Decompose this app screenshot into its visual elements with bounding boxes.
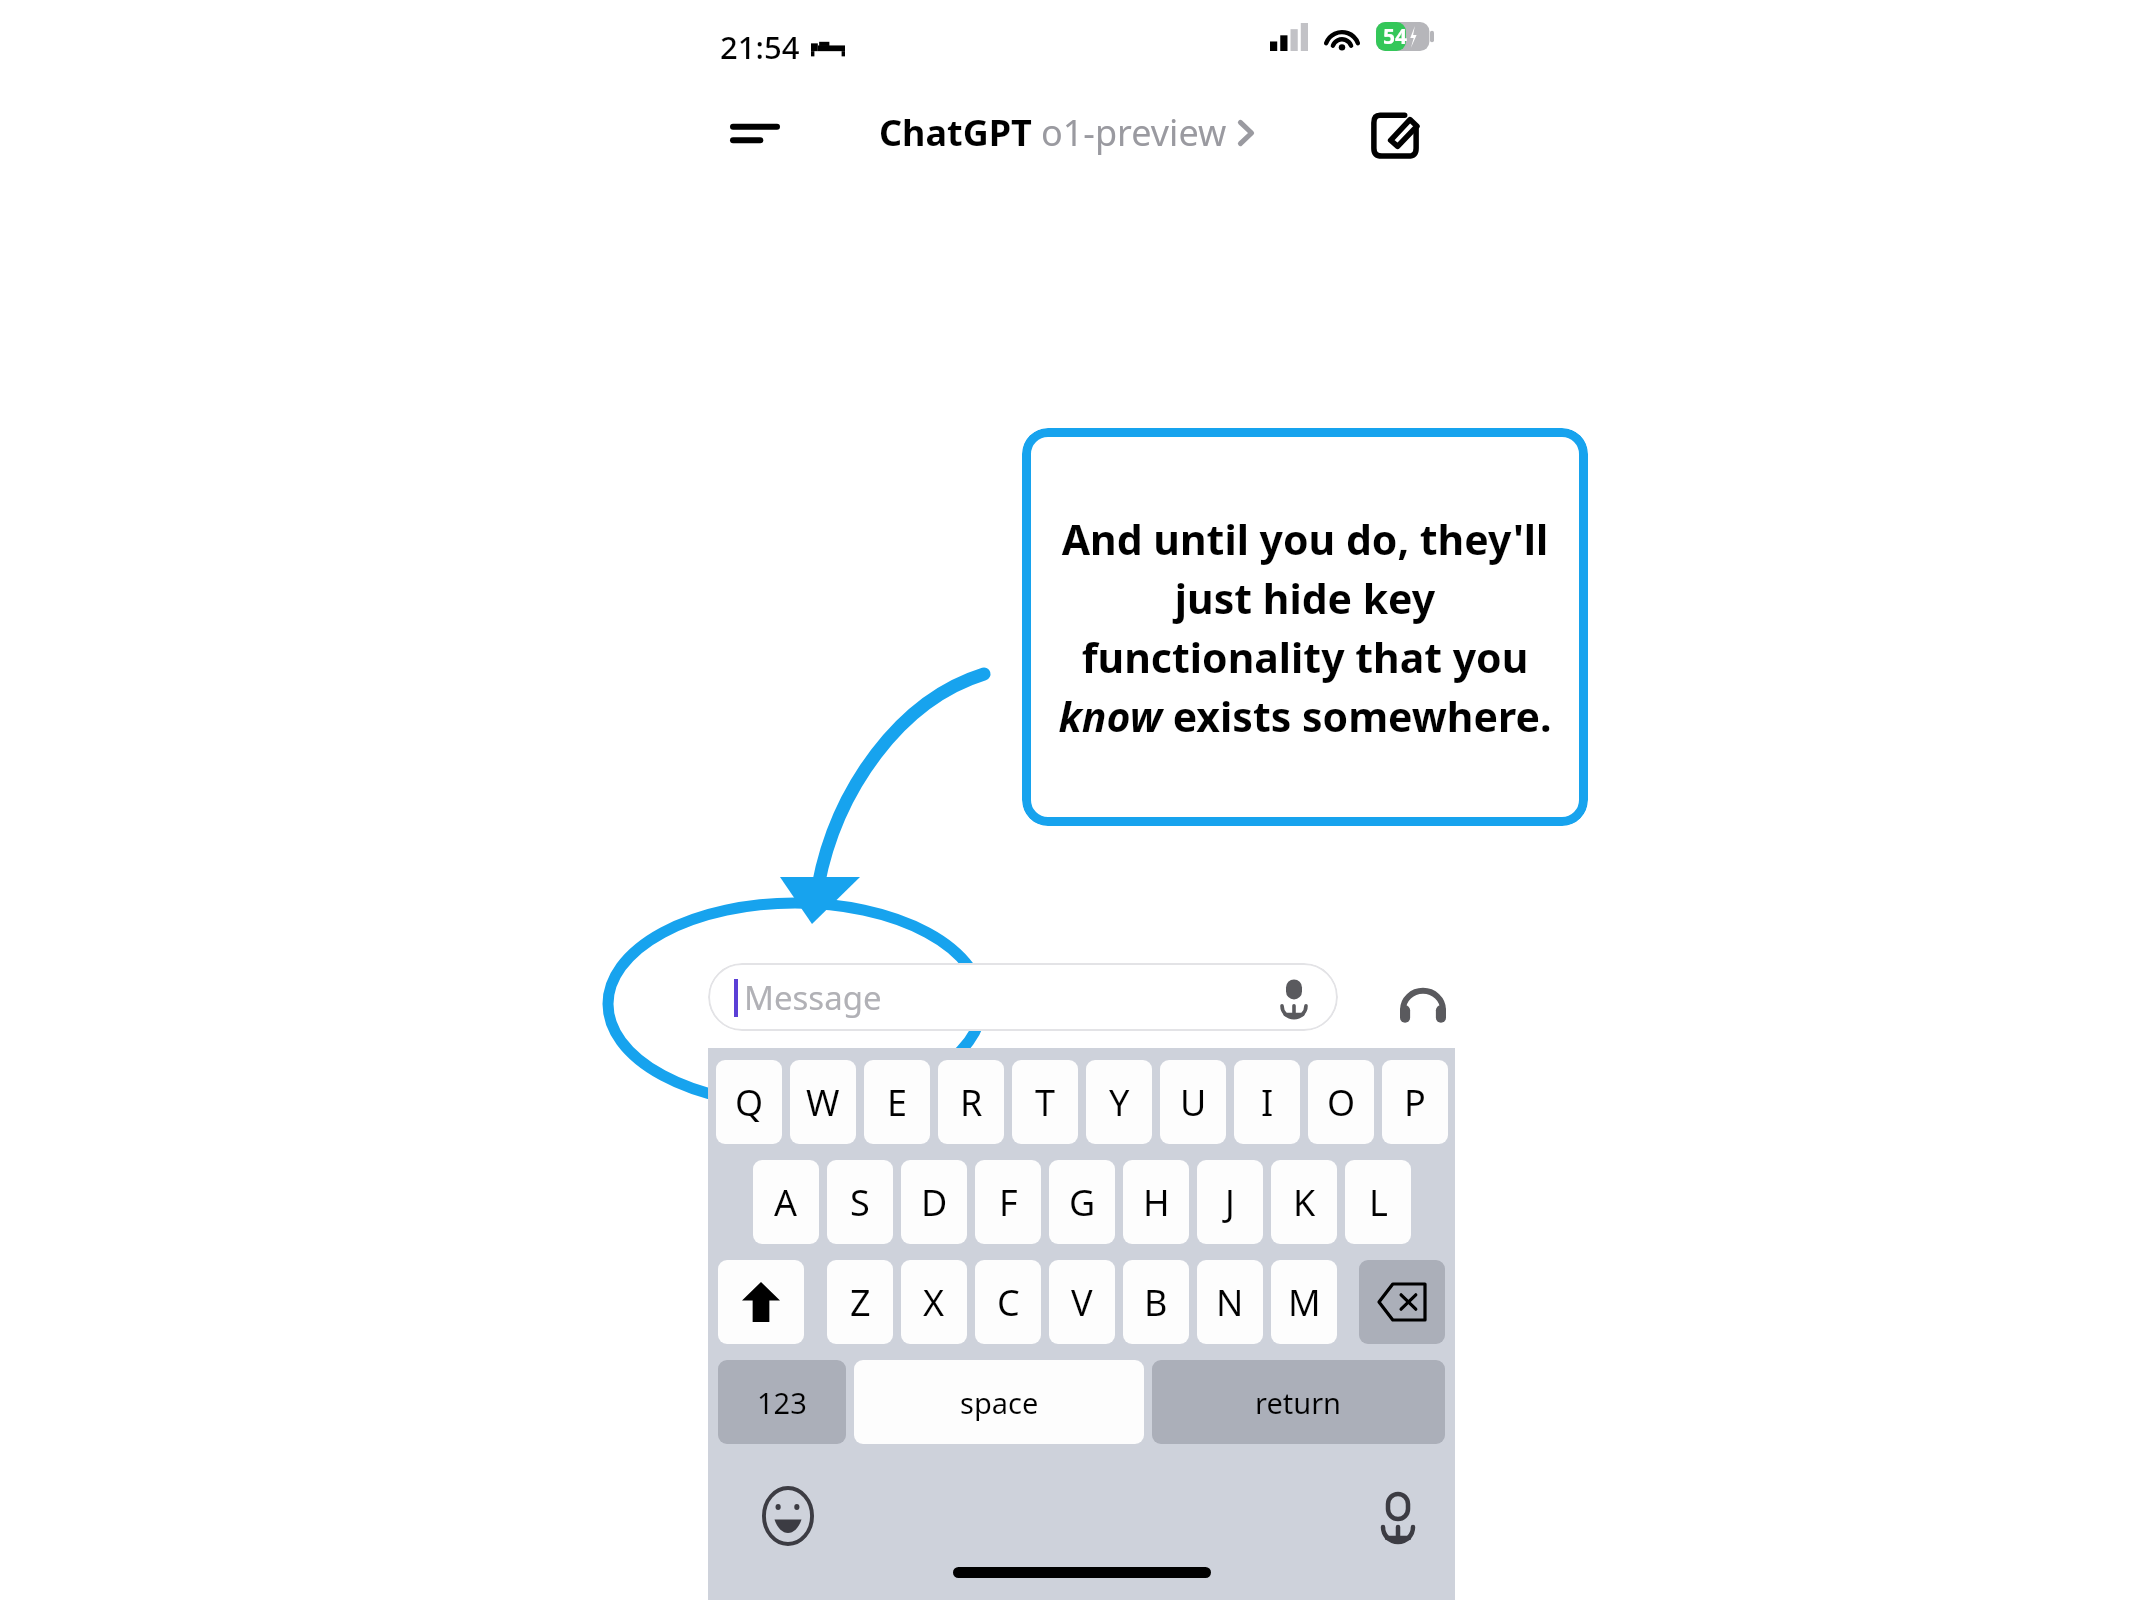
staticText: U bbox=[1180, 1078, 1207, 1127]
button[interactable]: Voice mode bbox=[1391, 974, 1455, 1038]
button[interactable]: T bbox=[1012, 1060, 1078, 1144]
button[interactable]: W bbox=[790, 1060, 856, 1144]
staticText: C bbox=[997, 1278, 1020, 1327]
button[interactable]: V bbox=[1049, 1260, 1115, 1344]
button[interactable]: G bbox=[1049, 1160, 1115, 1244]
staticText: W bbox=[806, 1078, 840, 1127]
button[interactable]: Z bbox=[827, 1260, 893, 1344]
staticText: R bbox=[960, 1078, 983, 1127]
button[interactable]: L bbox=[1345, 1160, 1411, 1244]
staticText: J bbox=[1225, 1178, 1235, 1227]
button[interactable]: K bbox=[1271, 1160, 1337, 1244]
staticText: o1-preview bbox=[1041, 108, 1227, 157]
button[interactable]: H bbox=[1123, 1160, 1189, 1244]
staticText: And until you do, they'll just hide key … bbox=[1048, 511, 1562, 744]
button[interactable]: space bbox=[854, 1360, 1144, 1444]
button[interactable]: A bbox=[753, 1160, 819, 1244]
staticText: A bbox=[774, 1178, 798, 1227]
button[interactable]: I bbox=[1234, 1060, 1300, 1144]
button[interactable]: New chat bbox=[1355, 95, 1435, 175]
staticText: return bbox=[1255, 1383, 1342, 1422]
button[interactable]: return bbox=[1152, 1360, 1445, 1444]
button[interactable]: Message bbox=[708, 963, 1338, 1031]
staticText: L bbox=[1369, 1178, 1388, 1227]
staticText: Q bbox=[735, 1078, 764, 1127]
button[interactable]: X bbox=[901, 1260, 967, 1344]
staticText: 21:54 bbox=[720, 26, 800, 68]
button[interactable]: Dictate bbox=[1362, 1480, 1434, 1552]
staticText: Message bbox=[744, 975, 882, 1020]
button[interactable]: R bbox=[938, 1060, 1004, 1144]
staticText: X bbox=[923, 1278, 945, 1327]
button[interactable]: Voice input bbox=[1272, 975, 1316, 1019]
button[interactable]: Emoji bbox=[752, 1480, 824, 1552]
button[interactable]: U bbox=[1160, 1060, 1226, 1144]
button[interactable]: S bbox=[827, 1160, 893, 1244]
staticText: G bbox=[1069, 1178, 1096, 1227]
button[interactable]: C bbox=[975, 1260, 1041, 1344]
button[interactable]: M bbox=[1271, 1260, 1337, 1344]
staticText: D bbox=[921, 1178, 948, 1227]
button[interactable]: N bbox=[1197, 1260, 1263, 1344]
staticText: N bbox=[1216, 1278, 1244, 1327]
staticText: 54 bbox=[1383, 22, 1408, 51]
staticText: Y bbox=[1109, 1078, 1130, 1127]
button[interactable]: Menu bbox=[715, 98, 795, 168]
staticText: ChatGPT bbox=[879, 108, 1032, 157]
staticText: M bbox=[1288, 1278, 1321, 1327]
button[interactable]: O bbox=[1308, 1060, 1374, 1144]
staticText: Z bbox=[850, 1278, 871, 1327]
button[interactable]: D bbox=[901, 1160, 967, 1244]
staticText: F bbox=[999, 1178, 1018, 1227]
staticText: V bbox=[1071, 1278, 1093, 1327]
button[interactable]: P bbox=[1382, 1060, 1448, 1144]
button[interactable]: Y bbox=[1086, 1060, 1152, 1144]
staticText: S bbox=[850, 1178, 870, 1227]
staticText: E bbox=[887, 1078, 908, 1127]
button[interactable]: E bbox=[864, 1060, 930, 1144]
staticText: space bbox=[960, 1383, 1039, 1422]
staticText: I bbox=[1261, 1078, 1274, 1127]
button[interactable]: ChatGPT bbox=[879, 108, 1254, 157]
button[interactable]: F bbox=[975, 1160, 1041, 1244]
staticText: K bbox=[1293, 1178, 1316, 1227]
button[interactable]: Shift bbox=[718, 1260, 804, 1344]
staticText: B bbox=[1144, 1278, 1168, 1327]
button[interactable]: J bbox=[1197, 1160, 1263, 1244]
button[interactable]: B bbox=[1123, 1260, 1189, 1344]
button[interactable]: Q bbox=[716, 1060, 782, 1144]
staticText: 123 bbox=[757, 1383, 807, 1422]
button[interactable]: Backspace bbox=[1359, 1260, 1445, 1344]
button[interactable]: 123 bbox=[718, 1360, 846, 1444]
staticText: P bbox=[1404, 1078, 1426, 1127]
staticText: T bbox=[1035, 1078, 1056, 1127]
staticText: H bbox=[1143, 1178, 1170, 1227]
staticText: O bbox=[1327, 1078, 1356, 1127]
